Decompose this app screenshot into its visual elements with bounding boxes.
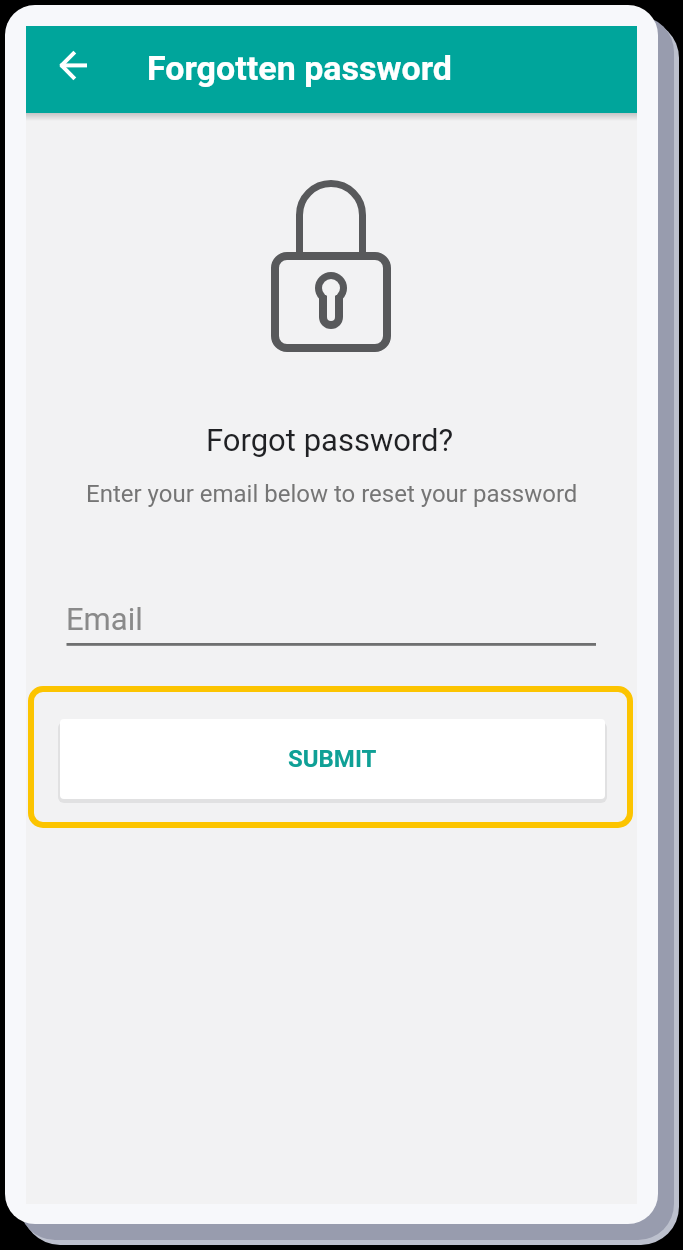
button[interactable]: SUBMIT <box>60 719 605 799</box>
staticText: Forgotten password <box>147 48 452 88</box>
button[interactable]: Email <box>66 588 602 649</box>
staticText: Forgot password? <box>206 422 454 458</box>
staticText: SUBMIT <box>288 745 377 773</box>
button[interactable] <box>46 41 102 97</box>
staticText: Enter your email below to reset your pas… <box>86 480 578 508</box>
staticText: Email <box>66 601 143 637</box>
